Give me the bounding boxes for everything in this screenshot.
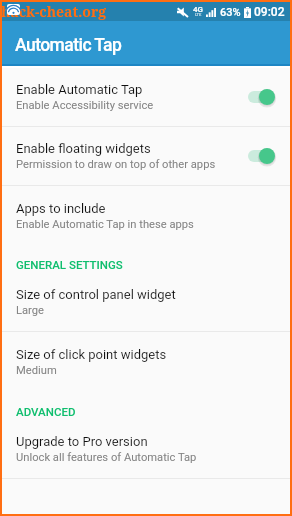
- staticText: Size of control panel widget: [16, 287, 176, 302]
- staticText: 09:02: [254, 5, 285, 19]
- staticText: 63%: [220, 6, 241, 19]
- staticText: ADVANCED: [16, 405, 76, 418]
- staticText: 4G: [193, 5, 203, 14]
- staticText: Apps to include: [16, 201, 106, 216]
- button[interactable]: Toggle setting: [248, 88, 275, 106]
- staticText: Unlock all features of Automatic Tap: [16, 451, 197, 464]
- button[interactable]: Apps to include: [2, 186, 290, 245]
- staticText: Large: [16, 304, 45, 317]
- staticText: GENERAL SETTINGS: [16, 258, 123, 271]
- staticText: Enable floating widgets: [16, 141, 151, 156]
- button[interactable]: Upgrade to Pro version: [2, 420, 290, 478]
- staticText: Enable Accessibility service: [16, 99, 154, 112]
- staticText: Size of click point widgets: [16, 347, 167, 362]
- staticText: Automatic Tap: [15, 35, 122, 56]
- staticText: hack-cheat.org: [1, 2, 107, 21]
- staticText: Enable Automatic Tap in these apps: [16, 218, 194, 231]
- staticText: Permission to draw on top of other apps: [16, 158, 216, 171]
- staticText: Medium: [16, 364, 57, 377]
- staticText: Upgrade to Pro version: [16, 434, 148, 449]
- button[interactable]: Enable floating widgets: [2, 127, 290, 185]
- button[interactable]: Size of click point widgets: [2, 332, 290, 391]
- button[interactable]: Enable Automatic Tap: [2, 68, 290, 126]
- staticText: Enable Automatic Tap: [16, 82, 143, 97]
- button[interactable]: Toggle setting: [248, 147, 275, 165]
- button[interactable]: Size of control panel widget: [2, 273, 290, 331]
- staticText: LTE: [195, 12, 202, 17]
